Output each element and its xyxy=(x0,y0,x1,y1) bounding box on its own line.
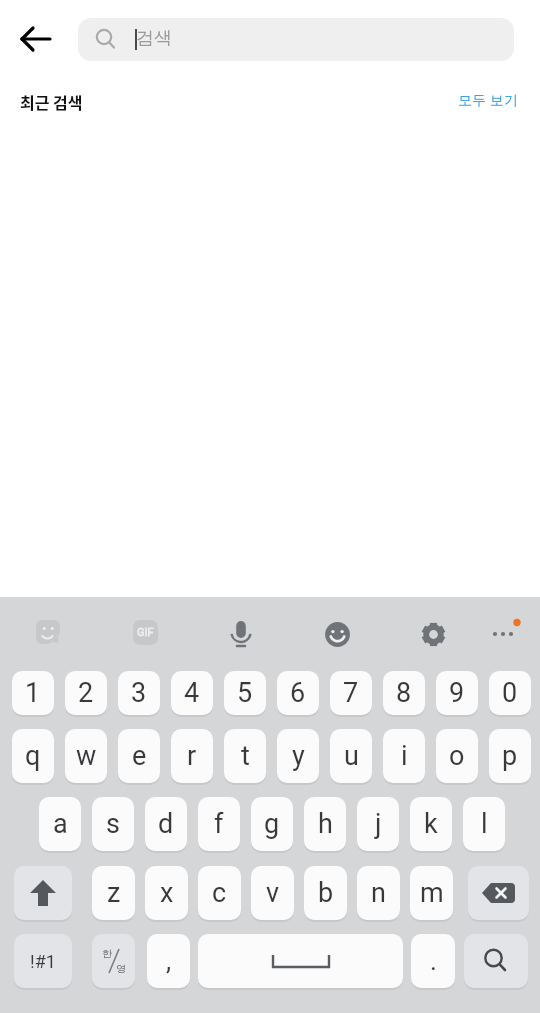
button[interactable]: j xyxy=(357,797,399,851)
staticText: 5 xyxy=(237,677,253,709)
button[interactable] xyxy=(468,866,529,920)
staticText: 한 xyxy=(102,947,112,960)
staticText: i xyxy=(401,740,408,772)
staticText: a xyxy=(53,808,68,840)
button[interactable]: h xyxy=(304,797,346,851)
staticText: c xyxy=(212,877,227,909)
staticText: k xyxy=(424,808,438,840)
staticText: 3 xyxy=(131,677,147,709)
staticText: d xyxy=(158,808,174,840)
button[interactable]: p xyxy=(489,729,531,783)
button[interactable]: r xyxy=(171,729,213,783)
button[interactable]: , xyxy=(147,934,190,988)
button[interactable]: 4 xyxy=(171,671,213,715)
staticText: s xyxy=(106,808,120,840)
staticText: 4 xyxy=(184,677,200,709)
staticText: q xyxy=(25,740,41,772)
button[interactable]: . xyxy=(411,934,455,988)
staticText: 영 xyxy=(116,962,126,975)
staticText: p xyxy=(502,740,518,772)
button[interactable]: w xyxy=(65,729,107,783)
staticText: m xyxy=(420,877,444,909)
button[interactable]: z xyxy=(92,866,135,920)
button[interactable]: b xyxy=(304,866,347,920)
button[interactable] xyxy=(413,614,453,654)
staticText: , xyxy=(166,946,172,976)
button[interactable] xyxy=(317,614,357,654)
button[interactable]: 모두 보기 xyxy=(448,86,528,112)
staticText: 검색 xyxy=(136,27,172,50)
staticText: y xyxy=(292,740,305,772)
staticText: z xyxy=(107,877,121,909)
button[interactable]: !#1 xyxy=(14,934,72,988)
button[interactable] xyxy=(464,934,528,988)
button[interactable]: i xyxy=(383,729,425,783)
staticText: h xyxy=(318,808,333,840)
button[interactable]: GIF xyxy=(125,612,165,652)
staticText: 9 xyxy=(449,677,465,709)
staticText: e xyxy=(132,740,147,772)
staticText: l xyxy=(481,808,488,840)
button[interactable]: t xyxy=(224,729,266,783)
button[interactable]: c xyxy=(198,866,241,920)
button[interactable]: 0 xyxy=(489,671,531,715)
staticText: x xyxy=(160,877,174,909)
staticText: 8 xyxy=(396,677,412,709)
button[interactable]: s xyxy=(92,797,134,851)
staticText: . xyxy=(430,946,437,976)
button[interactable]: 8 xyxy=(383,671,425,715)
staticText: 1 xyxy=(25,677,41,709)
button[interactable]: 한 xyxy=(92,934,135,988)
button[interactable]: n xyxy=(357,866,400,920)
button[interactable]: d xyxy=(145,797,187,851)
button[interactable]: g xyxy=(251,797,293,851)
button[interactable] xyxy=(198,934,403,988)
button[interactable]: e xyxy=(118,729,160,783)
staticText: o xyxy=(449,740,465,772)
staticText: 모두 보기 xyxy=(458,90,518,109)
staticText: 7 xyxy=(343,677,359,709)
button[interactable]: v xyxy=(251,866,294,920)
staticText: t xyxy=(241,740,250,772)
button[interactable] xyxy=(28,612,68,652)
button[interactable]: 5 xyxy=(224,671,266,715)
button[interactable]: 9 xyxy=(436,671,478,715)
button[interactable]: q xyxy=(12,729,54,783)
staticText: w xyxy=(76,740,97,772)
staticText: GIF xyxy=(137,626,154,639)
button[interactable]: l xyxy=(463,797,505,851)
button[interactable]: a xyxy=(39,797,81,851)
button[interactable] xyxy=(485,612,529,652)
staticText: r xyxy=(187,740,197,772)
button[interactable]: 3 xyxy=(118,671,160,715)
button[interactable]: 1 xyxy=(12,671,54,715)
button[interactable]: 2 xyxy=(65,671,107,715)
button[interactable]: y xyxy=(277,729,319,783)
button[interactable] xyxy=(14,866,72,920)
staticText: u xyxy=(344,740,359,772)
staticText: !#1 xyxy=(30,951,56,972)
button[interactable]: o xyxy=(436,729,478,783)
staticText: g xyxy=(264,808,280,840)
staticText: 최근 검색 xyxy=(20,90,83,113)
button[interactable]: 7 xyxy=(330,671,372,715)
staticText: b xyxy=(318,877,334,909)
staticText: 2 xyxy=(78,677,94,709)
staticText: v xyxy=(266,877,280,909)
button[interactable]: 6 xyxy=(277,671,319,715)
button[interactable]: x xyxy=(145,866,188,920)
button[interactable]: 검색 xyxy=(78,18,514,61)
button[interactable] xyxy=(221,614,261,654)
button[interactable]: k xyxy=(410,797,452,851)
staticText: n xyxy=(371,877,386,909)
button[interactable] xyxy=(14,19,58,59)
staticText: f xyxy=(214,808,224,840)
button[interactable]: f xyxy=(198,797,240,851)
button[interactable]: u xyxy=(330,729,372,783)
staticText: 6 xyxy=(290,677,306,709)
staticText: j xyxy=(375,808,382,840)
button[interactable]: m xyxy=(410,866,453,920)
staticText: 0 xyxy=(502,677,518,709)
